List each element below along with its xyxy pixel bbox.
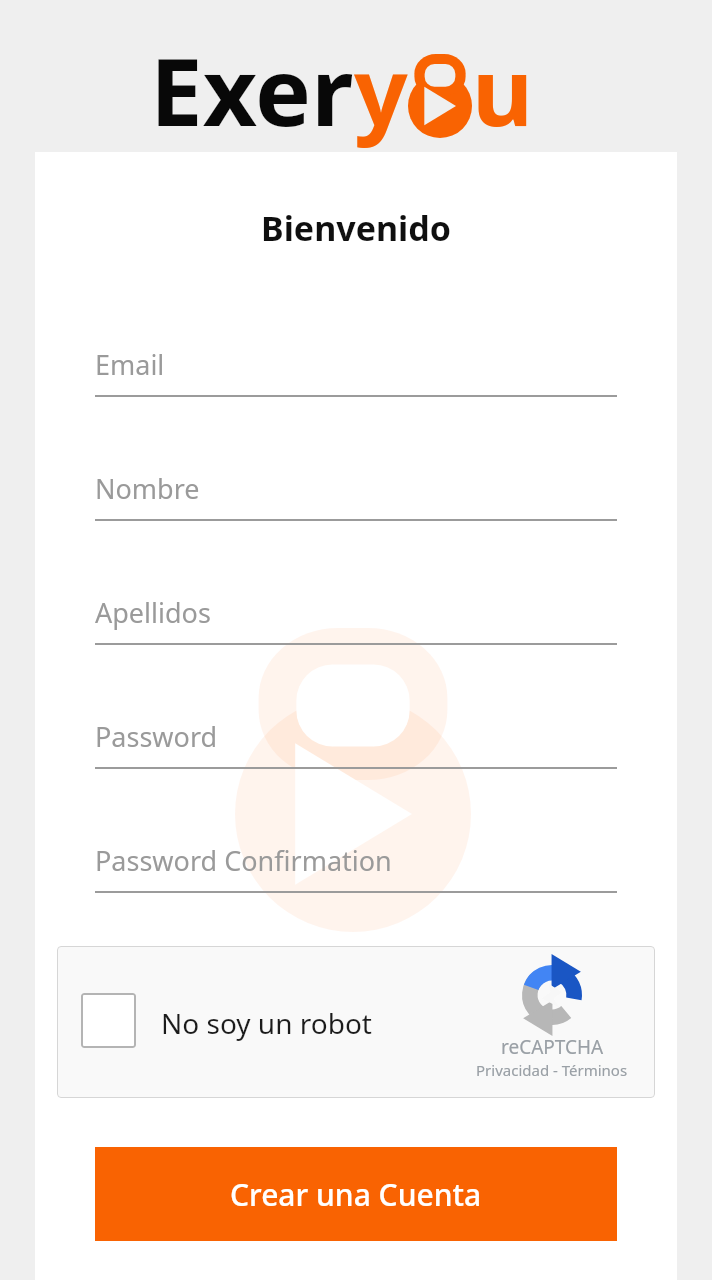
staticText: No soy un robot	[161, 1004, 372, 1042]
button[interactable]: Nombre	[87, 466, 625, 536]
staticText: Crear una Cuenta	[230, 1174, 482, 1215]
button[interactable]: Apellidos	[87, 590, 625, 660]
button[interactable]: Email	[87, 342, 625, 412]
staticText: u	[472, 26, 534, 154]
button[interactable]: Password	[87, 714, 625, 784]
staticText: Nombre	[95, 470, 200, 507]
staticText: Password Confirmation	[95, 842, 392, 879]
staticText: Email	[95, 346, 165, 383]
other: No soy un robot	[81, 993, 136, 1048]
button[interactable]: No soy un robot	[57, 946, 655, 1098]
button[interactable]: Crear una Cuenta	[95, 1147, 617, 1241]
staticText: y	[354, 26, 408, 154]
staticText: Privacidad - Términos	[476, 1060, 628, 1080]
button[interactable]: Password Confirmation	[87, 838, 625, 908]
staticText: Apellidos	[95, 594, 211, 631]
staticText: Bienvenido	[35, 205, 677, 251]
staticText: reCAPTCHA	[501, 1034, 604, 1060]
staticText: Password	[95, 718, 218, 755]
staticText: Exer	[150, 26, 354, 154]
